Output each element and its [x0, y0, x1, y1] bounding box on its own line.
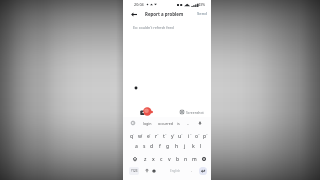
button[interactable]: x	[149, 154, 157, 164]
button[interactable]: 0	[201, 131, 209, 141]
button[interactable]: m	[190, 154, 198, 164]
button[interactable]: Voice input	[197, 120, 202, 125]
staticText: k	[192, 143, 195, 150]
staticText: i	[188, 133, 190, 140]
staticText: j	[184, 143, 186, 150]
button[interactable]: occurred	[156, 119, 175, 128]
staticText: 0	[206, 132, 208, 135]
staticText: u	[178, 133, 182, 140]
button[interactable]: 2	[136, 131, 144, 141]
button[interactable]: n	[182, 154, 190, 164]
button[interactable]: z	[141, 154, 149, 164]
staticText: w	[138, 133, 143, 140]
button[interactable]: Keyboard settings	[150, 166, 158, 176]
button[interactable]: Shift	[131, 154, 139, 164]
staticText: c	[160, 156, 163, 163]
button[interactable]: g	[164, 141, 172, 151]
staticText: English	[170, 169, 181, 173]
staticText: x	[152, 156, 155, 163]
staticText: m	[192, 156, 197, 163]
button[interactable]: 5	[160, 131, 168, 141]
button[interactable]: Emoji	[143, 166, 151, 176]
button[interactable]: 9	[193, 131, 201, 141]
staticText: o	[195, 133, 199, 140]
staticText: Ex: couldn't refresh feed	[133, 25, 174, 30]
button[interactable]: 8	[185, 131, 193, 141]
staticText: 4	[157, 132, 159, 135]
button[interactable]: f	[156, 141, 164, 151]
button[interactable]: –	[185, 119, 191, 128]
staticText: a	[135, 143, 138, 150]
button[interactable]: b	[174, 154, 182, 164]
staticText: 9	[198, 132, 200, 135]
staticText: 43%	[198, 2, 206, 7]
staticText: 2	[141, 132, 143, 135]
staticText: occurred	[158, 121, 173, 126]
button[interactable]: 3	[144, 131, 152, 141]
staticText: r	[155, 133, 158, 140]
button[interactable]: Enter	[199, 167, 207, 175]
staticText: t	[163, 133, 165, 140]
button[interactable]: k	[189, 141, 197, 151]
staticText: .	[191, 168, 193, 174]
staticText: v	[168, 156, 171, 163]
button[interactable]: c	[157, 154, 165, 164]
staticText: Send	[197, 11, 207, 17]
button[interactable]: 4	[152, 131, 160, 141]
button[interactable]: 1	[128, 131, 136, 141]
button[interactable]: s	[140, 141, 148, 151]
button[interactable]: login	[141, 119, 154, 128]
staticText: g	[166, 143, 170, 150]
staticText: login	[143, 121, 152, 126]
staticText: l	[200, 143, 202, 150]
button[interactable]: Back	[128, 8, 140, 20]
button[interactable]: is	[175, 119, 182, 128]
staticText: Screenshot	[186, 110, 204, 115]
button[interactable]: l	[197, 141, 205, 151]
staticText: e	[147, 133, 150, 140]
staticText: 20:04	[134, 2, 144, 7]
button[interactable]: v	[165, 154, 173, 164]
staticText: –	[187, 121, 189, 126]
button[interactable]: j	[181, 141, 189, 151]
staticText: 6	[173, 132, 175, 135]
staticText: y	[171, 133, 174, 140]
button[interactable]: d	[148, 141, 156, 151]
staticText: s	[143, 143, 146, 150]
staticText: q	[130, 133, 134, 140]
button[interactable]: 7	[176, 131, 184, 141]
staticText: 1	[133, 132, 135, 135]
staticText: Report a problem	[145, 11, 184, 17]
staticText: 7	[181, 132, 183, 135]
button[interactable]: Backspace	[200, 154, 208, 164]
staticText: f	[159, 143, 161, 150]
button[interactable]: Screenshot	[180, 108, 204, 116]
staticText: d	[150, 143, 154, 150]
staticText: h	[175, 143, 179, 150]
staticText: ?123	[131, 169, 138, 173]
button[interactable]: a	[132, 141, 140, 151]
staticText: n	[184, 156, 188, 163]
button[interactable]: Send	[195, 9, 209, 19]
staticText: p	[203, 133, 207, 140]
button[interactable]: h	[173, 141, 181, 151]
button[interactable]: ?123	[129, 167, 139, 175]
staticText: z	[144, 156, 147, 163]
button[interactable]: 6	[168, 131, 176, 141]
staticText: 8	[190, 132, 192, 135]
button[interactable]: Expand toolbar	[130, 120, 135, 125]
staticText: 5	[165, 132, 167, 135]
staticText: is	[177, 121, 180, 126]
staticText: 3	[149, 132, 151, 135]
staticText: b	[176, 156, 180, 163]
